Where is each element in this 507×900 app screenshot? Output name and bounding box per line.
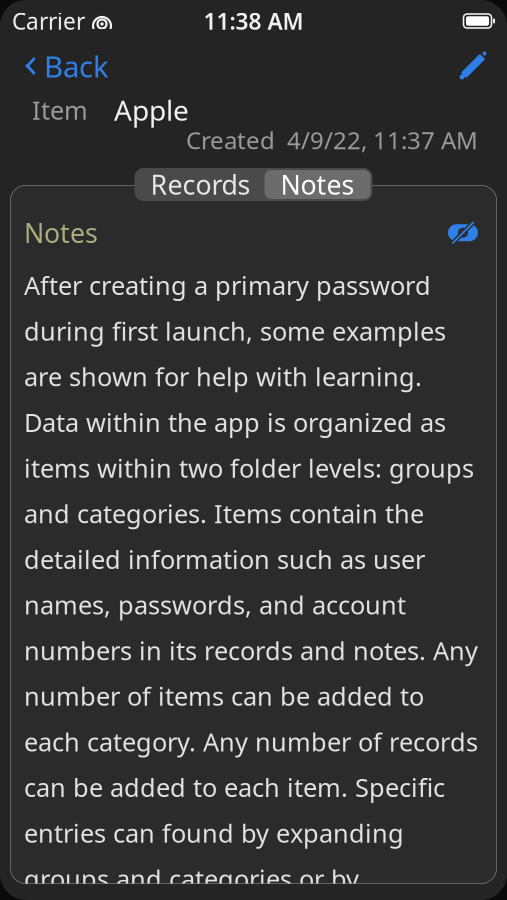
staticText: Notes: [24, 215, 98, 250]
staticText: Back: [44, 46, 109, 85]
staticText: Notes: [280, 167, 354, 202]
button[interactable]: Notes: [264, 170, 370, 199]
staticText: 11:38 AM: [203, 6, 303, 36]
staticText: Item: [32, 93, 88, 127]
staticText: Records: [150, 167, 250, 202]
staticText: After creating a primary password during…: [24, 268, 478, 900]
staticText: Carrier: [12, 6, 85, 36]
staticText: Apple: [114, 91, 189, 129]
staticText: 4/9/22, 11:37 AM: [287, 124, 478, 156]
button[interactable]: Records: [136, 170, 264, 199]
button[interactable]: Hide notes: [443, 216, 483, 250]
staticText: Created: [186, 124, 275, 156]
button[interactable]: Edit: [449, 44, 497, 88]
button[interactable]: Back: [10, 38, 123, 93]
